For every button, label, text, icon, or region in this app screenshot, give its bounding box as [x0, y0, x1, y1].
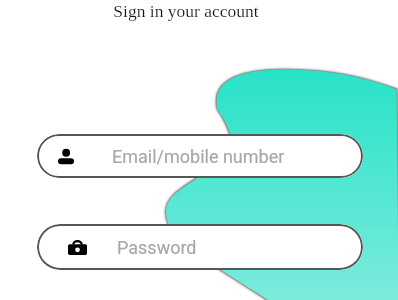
other: Password — [68, 240, 87, 255]
button[interactable]: Account — [37, 134, 363, 178]
staticText: Password — [117, 237, 197, 258]
staticText: Sign in your account — [0, 1, 372, 20]
button[interactable]: Password — [37, 224, 363, 270]
other: Account — [58, 149, 74, 164]
staticText: Email/mobile number — [112, 146, 285, 167]
